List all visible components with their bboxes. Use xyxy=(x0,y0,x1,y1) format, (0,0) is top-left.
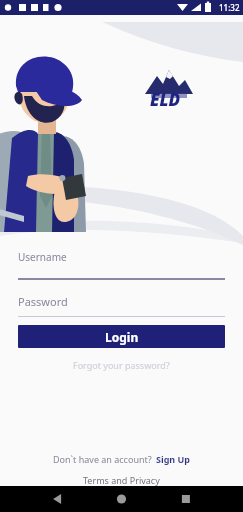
staticText: Login xyxy=(105,329,139,345)
button[interactable]: Terms and Privacy xyxy=(83,474,160,486)
staticText: Forgot your password? xyxy=(73,359,170,371)
button[interactable]: Sign Up xyxy=(156,453,191,465)
staticText: Don`t have an account? xyxy=(53,453,152,465)
staticText: Terms and Privacy xyxy=(83,474,160,486)
staticText: 11:32 xyxy=(219,2,240,13)
staticText: Password xyxy=(18,294,68,309)
staticText: Sign Up xyxy=(156,453,191,465)
button[interactable]: Forgot your password? xyxy=(18,357,225,373)
staticText: Username xyxy=(18,250,67,264)
button[interactable]: Username xyxy=(18,250,225,278)
staticText: ELD xyxy=(150,88,181,111)
button[interactable]: Login xyxy=(18,325,225,348)
button[interactable]: Password xyxy=(18,294,225,316)
